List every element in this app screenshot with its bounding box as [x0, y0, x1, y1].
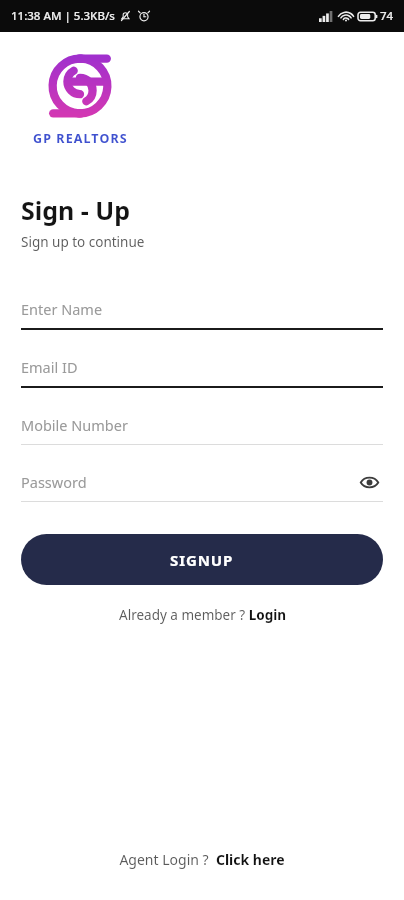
staticText: GP REALTORS — [33, 130, 128, 147]
staticText: 11:38 AM | 5.3KB/s — [11, 8, 115, 24]
button[interactable]: Email ID — [21, 348, 383, 388]
staticText: SIGNUP — [170, 550, 234, 570]
button[interactable]: Password — [21, 463, 383, 502]
staticText: Enter Name — [21, 299, 383, 319]
staticText: Mobile Number — [21, 415, 383, 435]
staticText: 74 — [380, 8, 394, 24]
staticText: Sign - Up — [21, 193, 131, 227]
button[interactable]: Show password — [355, 468, 383, 496]
staticText: Agent Login ? Click here — [119, 850, 285, 869]
staticText: Password — [21, 472, 355, 492]
button[interactable]: Enter Name — [21, 290, 383, 330]
button[interactable]: SIGNUP — [21, 534, 383, 585]
staticText: Already a member ? Login — [119, 606, 286, 624]
button[interactable]: Already a member ? Login — [119, 606, 286, 624]
button[interactable]: Agent Login ? Click here — [119, 850, 285, 869]
staticText: Email ID — [21, 357, 383, 377]
button[interactable]: Mobile Number — [21, 406, 383, 445]
staticText: Sign up to continue — [21, 233, 145, 251]
